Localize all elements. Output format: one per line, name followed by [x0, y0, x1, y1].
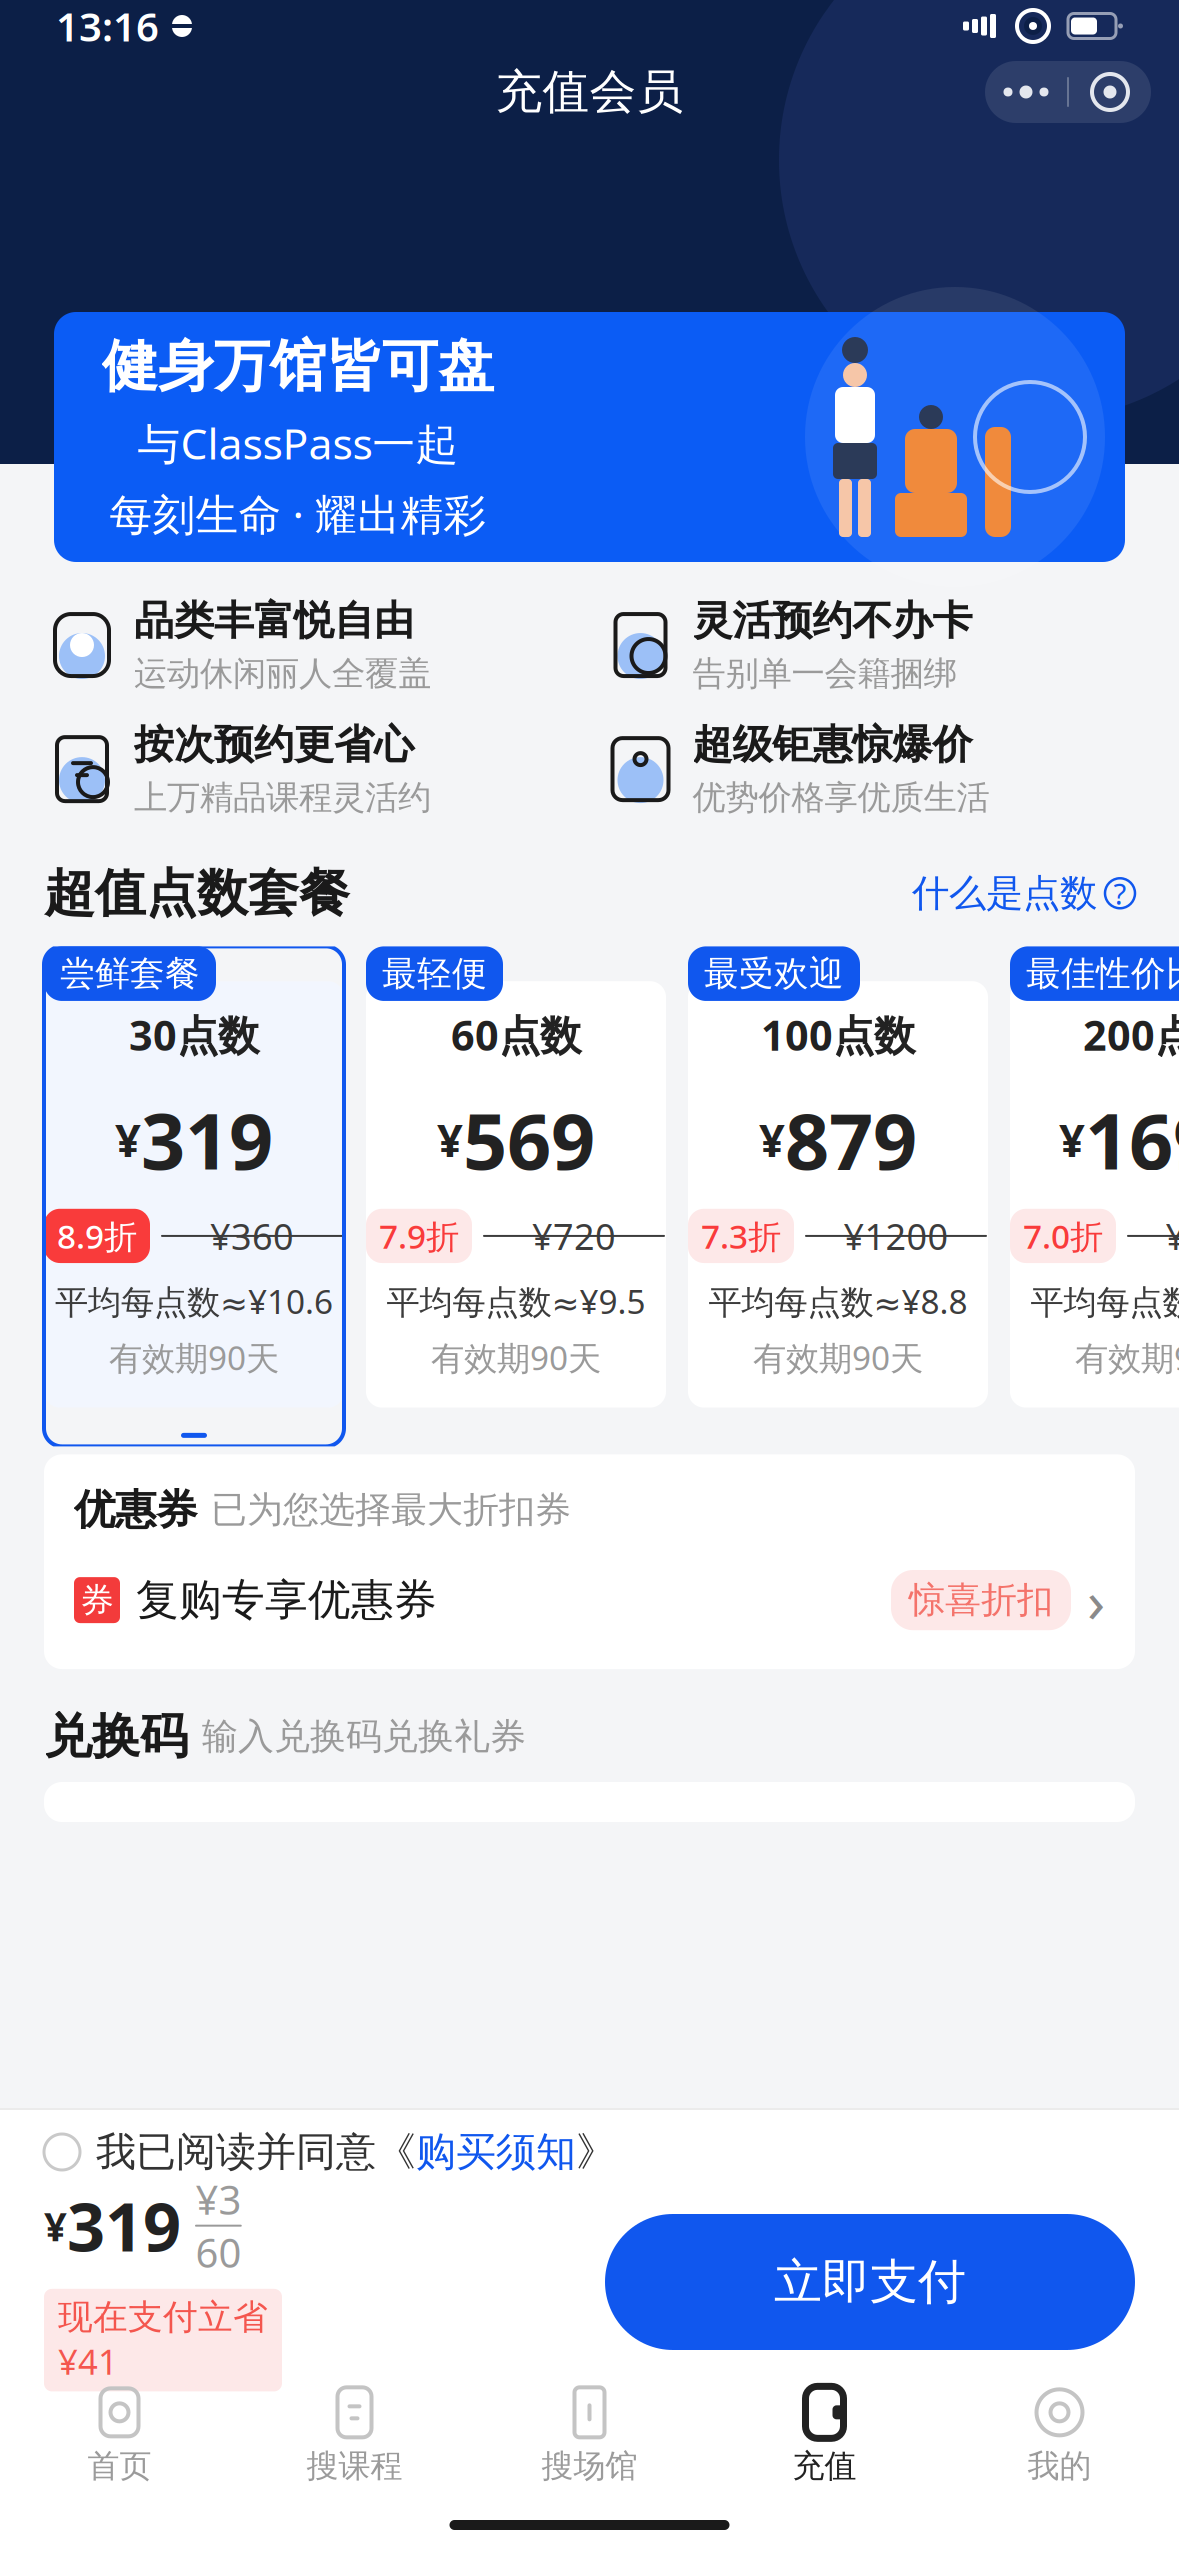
staticText: 我已阅读并同意《 [96, 2127, 416, 2176]
staticText: 569 [463, 1088, 595, 1191]
staticText: 平均每点数≈¥8.8 [708, 1279, 967, 1323]
staticText: 超级钜惠惊爆价 [692, 720, 972, 769]
staticText: 购买须知 [416, 2127, 576, 2176]
staticText: 已为您选择最大折扣券 [211, 1488, 571, 1532]
staticText: 按次预约更省心 [134, 720, 414, 769]
staticText: 告别单一会籍捆绑 [692, 653, 956, 694]
button[interactable]: 什么是点数 [912, 870, 1135, 916]
staticText: 品类丰富悦自由 [134, 596, 414, 645]
button[interactable]: 搜场馆 [472, 2380, 707, 2490]
staticText: 200点数 [1083, 1007, 1179, 1062]
staticText: 搜场馆 [541, 2446, 637, 2486]
staticText: 复购专享优惠券 [136, 1574, 437, 1626]
staticText: 8.9折 [57, 1214, 137, 1258]
staticText: 7.0折 [1023, 1214, 1103, 1258]
staticText: 319 [141, 1088, 273, 1191]
staticText: 最佳性价比 [1026, 952, 1179, 995]
staticText: ? [1113, 874, 1126, 913]
button[interactable]: 首页 [2, 2380, 237, 2490]
staticText: ¥1200 [843, 1212, 948, 1260]
staticText: ¥ [437, 1109, 463, 1169]
staticText: 优势价格享优质生活 [692, 777, 989, 818]
staticText: 兑换码 [44, 1707, 188, 1766]
staticText: 现在支付立省¥41 [58, 2296, 268, 2384]
staticText: 319 [67, 2181, 181, 2270]
staticText: 7.9折 [379, 1214, 459, 1258]
button[interactable]: 我已阅读并同意《 [0, 2110, 1179, 2194]
staticText: 1699 [1085, 1088, 1179, 1191]
staticText: ¥ [759, 1109, 785, 1169]
staticText: ¥720 [532, 1212, 616, 1260]
staticText: 尝鲜套餐 [60, 952, 200, 995]
staticText: 平均每点数≈¥10.6 [55, 1279, 333, 1323]
staticText: 搜课程 [306, 2446, 402, 2486]
staticText: 最轻便 [382, 952, 487, 995]
button[interactable]: 我的 [942, 2380, 1177, 2490]
button[interactable]: 充值 [707, 2380, 942, 2490]
staticText: ¥ [115, 1109, 141, 1169]
staticText: 有效期90天 [1075, 1335, 1179, 1380]
staticText: 7.3折 [701, 1214, 781, 1258]
staticText: 》 [576, 2127, 616, 2176]
staticText: 平均每点数≈¥8.5 [1030, 1279, 1179, 1323]
staticText: 什么是点数 [912, 870, 1097, 916]
button[interactable]: 200点数 [1010, 946, 1179, 1446]
staticText: 优惠券 [74, 1484, 197, 1535]
button[interactable]: 100点数 [688, 946, 988, 1446]
staticText: 有效期90天 [431, 1335, 601, 1380]
staticText: 我的 [1027, 2446, 1091, 2486]
staticText: 平均每点数≈¥9.5 [386, 1279, 645, 1323]
staticText: ¥ [44, 2199, 67, 2252]
staticText: ¥2400 [1165, 1212, 1179, 1260]
staticText: 健身万馆皆可盘 [102, 332, 494, 401]
button[interactable]: 优惠券 [44, 1454, 1135, 1669]
staticText: 输入兑换码兑换礼券 [202, 1714, 526, 1759]
button[interactable]: 立即支付 [605, 2214, 1135, 2350]
staticText: 30点数 [129, 1007, 259, 1062]
staticText: 首页 [87, 2446, 151, 2486]
staticText: 充值会员 [495, 63, 683, 121]
staticText: › [1087, 1561, 1105, 1639]
staticText: 每刻生命 · 耀出精彩 [109, 485, 486, 542]
staticText: 有效期90天 [753, 1335, 923, 1380]
button[interactable]: 搜课程 [237, 2380, 472, 2490]
staticText: 超值点数套餐 [44, 862, 350, 924]
staticText: 13:16 [56, 0, 159, 52]
button[interactable]: 准星 [1069, 61, 1151, 123]
staticText: 灵活预约不办卡 [692, 596, 972, 645]
staticText: 100点数 [761, 1007, 915, 1062]
staticText: 运动休闲丽人全覆盖 [134, 653, 431, 694]
staticText: 充值 [792, 2446, 856, 2486]
staticText: 60点数 [451, 1007, 581, 1062]
button[interactable]: 30点数 [44, 946, 344, 1446]
staticText: 券 [80, 1580, 113, 1620]
staticText: 879 [785, 1088, 917, 1191]
staticText: 最受欢迎 [704, 952, 844, 995]
staticText: ¥ [1059, 1109, 1085, 1169]
staticText: 惊喜折扣 [909, 1578, 1053, 1622]
button[interactable]: 更多 [985, 61, 1067, 123]
staticText: 与ClassPass一起 [137, 415, 458, 471]
staticText: 立即支付 [774, 2252, 966, 2311]
staticText: ¥360 [195, 2173, 241, 2279]
button[interactable]: 60点数 [366, 946, 666, 1446]
staticText: 有效期90天 [109, 1335, 279, 1380]
staticText: ¥360 [210, 1212, 294, 1260]
staticText: 上万精品课程灵活约 [134, 777, 431, 818]
